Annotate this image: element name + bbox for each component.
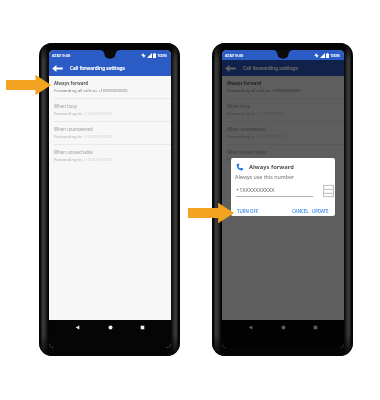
button[interactable]: When unanswered	[49, 122, 171, 144]
staticText: 100%	[330, 53, 341, 58]
staticText: Forwarding to	[54, 111, 83, 117]
button[interactable]: Back	[246, 323, 255, 332]
staticText: AT&T 9:30	[225, 53, 244, 58]
button[interactable]: When unanswered	[222, 122, 344, 144]
button[interactable]: UPDATE	[312, 208, 329, 214]
staticText: Forwarding to	[54, 134, 83, 140]
button[interactable]: Back	[52, 63, 63, 74]
staticText: Always forward	[54, 80, 89, 86]
staticText: Call forwarding settings	[70, 65, 125, 72]
button[interactable]: When unreachable	[222, 145, 344, 167]
button[interactable]: Always forward	[222, 76, 344, 98]
staticText: AT&T 9:30	[52, 53, 71, 58]
staticText: +1XXXXXXXXXX	[83, 134, 113, 140]
staticText: When unanswered	[227, 126, 266, 132]
staticText: Call forwarding settings	[243, 65, 298, 72]
button[interactable]: When unreachable	[49, 145, 171, 167]
button[interactable]: When busy	[49, 99, 171, 121]
button[interactable]: Back	[225, 63, 236, 74]
staticText: Forwarding to	[227, 157, 256, 163]
staticText: +1XXXXXXXXXX	[271, 88, 301, 94]
staticText: When unanswered	[54, 126, 93, 132]
staticText: Forwarding to	[227, 111, 256, 117]
staticText: +1XXXXXXXXXX	[98, 88, 128, 94]
button[interactable]: Choose a contact	[322, 184, 335, 198]
staticText: +1XXXXXXXXXX	[83, 111, 113, 117]
button[interactable]: Recent apps	[311, 323, 320, 332]
staticText: Forwarding to	[54, 157, 83, 163]
staticText: When busy	[227, 103, 250, 109]
staticText: Always use this number	[235, 173, 295, 180]
staticText: Forwarding to	[227, 134, 256, 140]
staticText: +1XXXXXXXXXX	[256, 157, 286, 163]
staticText: When unreachable	[54, 149, 93, 155]
staticText: 100%	[157, 53, 168, 58]
staticText: +1XXXXXXXXXX	[83, 157, 113, 163]
button[interactable]: Home	[279, 323, 288, 332]
staticText: +1XXXXXXXXXX	[236, 186, 275, 193]
staticText: Always forward	[249, 163, 294, 171]
button[interactable]: Back	[73, 323, 82, 332]
button[interactable]: Home	[106, 323, 115, 332]
staticText: Forwarding all calls to	[227, 88, 271, 94]
staticText: Forwarding all calls to	[54, 88, 98, 94]
button[interactable]: Back	[49, 60, 171, 76]
button[interactable]: TURN OFF	[237, 208, 259, 214]
button[interactable]: Back	[222, 60, 344, 76]
button[interactable]: Recent apps	[138, 323, 147, 332]
staticText: Always forward	[227, 80, 262, 86]
staticText: When unreachable	[227, 149, 266, 155]
button[interactable]: CANCEL	[292, 208, 309, 214]
staticText: When busy	[54, 103, 77, 109]
button[interactable]: Always forward	[49, 76, 171, 98]
